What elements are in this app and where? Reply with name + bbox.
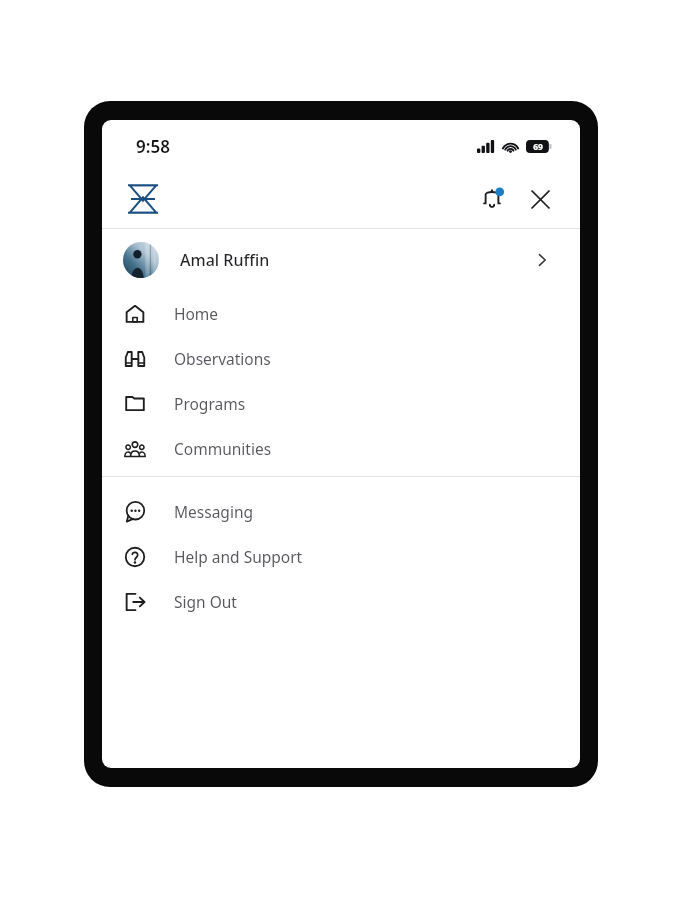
staticText: 69 bbox=[533, 141, 543, 153]
staticText: Programs bbox=[174, 393, 246, 414]
staticText: 9:58 bbox=[136, 135, 170, 158]
button[interactable]: Communities bbox=[102, 426, 580, 471]
staticText: Home bbox=[174, 303, 219, 324]
staticText: Messaging bbox=[174, 501, 253, 522]
staticText: Observations bbox=[174, 348, 271, 369]
staticText: Amal Ruffin bbox=[180, 249, 270, 271]
button[interactable]: Home bbox=[102, 291, 580, 336]
button[interactable]: Messaging bbox=[102, 489, 580, 534]
button[interactable]: Programs bbox=[102, 381, 580, 426]
staticText: Sign Out bbox=[174, 591, 237, 612]
button[interactable]: Amal Ruffin bbox=[102, 229, 580, 291]
button[interactable]: Sign Out bbox=[102, 579, 580, 624]
button[interactable]: Close bbox=[520, 179, 560, 219]
staticText: Help and Support bbox=[174, 546, 303, 567]
button[interactable]: App logo bbox=[123, 179, 163, 219]
button[interactable]: Notifications bbox=[472, 179, 512, 219]
button[interactable]: Observations bbox=[102, 336, 580, 381]
button[interactable]: Help and Support bbox=[102, 534, 580, 579]
staticText: Communities bbox=[174, 438, 272, 459]
